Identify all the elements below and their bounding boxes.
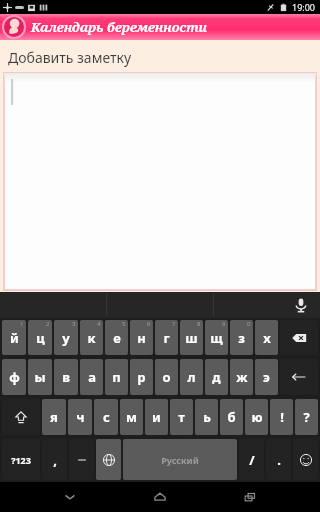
button[interactable]: ц	[28, 320, 52, 355]
button[interactable]: к	[80, 320, 103, 355]
staticText: к	[87, 329, 96, 347]
staticText: 3	[72, 320, 76, 328]
staticText: щ	[210, 329, 223, 347]
button[interactable]: Shift	[2, 399, 40, 435]
button[interactable]: ж	[230, 359, 253, 395]
staticText: 0	[247, 320, 251, 328]
staticText: з	[238, 329, 245, 347]
staticText: ф	[9, 368, 20, 386]
button[interactable]: р	[130, 359, 153, 395]
button[interactable]: э	[255, 359, 278, 395]
button[interactable]: щ	[205, 320, 228, 355]
staticText: /	[249, 451, 255, 469]
staticText: Календарь беременности	[31, 18, 207, 36]
button[interactable]: е	[105, 320, 128, 355]
button[interactable]: в	[54, 359, 78, 395]
button[interactable]: н	[130, 320, 153, 355]
button[interactable]: с	[94, 399, 118, 435]
staticText: ы	[34, 368, 46, 386]
button[interactable]: Back	[50, 482, 90, 512]
staticText: ,	[53, 451, 57, 469]
staticText: 19:00	[292, 1, 316, 13]
button[interactable]: Home	[140, 482, 180, 512]
button[interactable]: г	[155, 320, 178, 355]
staticText: и	[152, 408, 161, 426]
button[interactable]: Enter	[280, 359, 318, 395]
staticText: ь	[203, 408, 211, 426]
button[interactable]: ?	[295, 399, 318, 435]
staticText: т	[178, 408, 185, 426]
button[interactable]: м	[120, 399, 143, 435]
button[interactable]: и	[145, 399, 168, 435]
staticText: ч	[76, 408, 85, 426]
button[interactable]: Backspace	[280, 320, 318, 355]
button[interactable]: з	[230, 320, 253, 355]
button[interactable]: у	[54, 320, 78, 355]
button[interactable]: Emoji	[293, 439, 318, 480]
staticText: ?123	[11, 454, 31, 466]
button[interactable]: ш	[180, 320, 203, 355]
button[interactable]	[4, 73, 316, 290]
button[interactable]: а	[80, 359, 103, 395]
staticText: 1	[20, 320, 24, 328]
button[interactable]: й	[2, 320, 26, 355]
button[interactable]: о	[155, 359, 178, 395]
button[interactable]: ч	[68, 399, 92, 435]
button[interactable]: я	[42, 399, 66, 435]
staticText: р	[137, 368, 146, 386]
staticText: 7	[172, 320, 176, 328]
staticText: н	[137, 329, 146, 347]
button[interactable]: .	[266, 439, 291, 480]
button[interactable]: ь	[195, 399, 218, 435]
button[interactable]: д	[205, 359, 228, 395]
staticText: й	[10, 329, 19, 347]
staticText: д	[212, 368, 221, 386]
staticText: Добавить заметку	[8, 48, 132, 67]
staticText: е	[113, 329, 121, 347]
button[interactable]: Change language	[96, 439, 121, 480]
staticText: я	[50, 408, 58, 426]
staticText: п	[112, 368, 121, 386]
button[interactable]: Voice input	[292, 296, 310, 314]
staticText: ш	[185, 329, 198, 347]
staticText: у	[62, 329, 70, 347]
staticText: ж	[236, 368, 248, 386]
staticText: 4	[97, 320, 101, 328]
staticText: с	[103, 408, 110, 426]
button[interactable]: /	[239, 439, 264, 480]
staticText: !	[280, 408, 284, 426]
button[interactable]: !	[270, 399, 293, 435]
staticText: 2	[46, 320, 50, 328]
staticText: 6	[147, 320, 151, 328]
button[interactable]: п	[105, 359, 128, 395]
button[interactable]: б	[220, 399, 243, 435]
staticText: х	[263, 329, 271, 347]
staticText: э	[263, 368, 270, 386]
button[interactable]: ф	[2, 359, 26, 395]
staticText: ?	[303, 408, 310, 426]
staticText: .	[277, 451, 281, 469]
button[interactable]: ю	[245, 399, 268, 435]
button[interactable]: л	[180, 359, 203, 395]
staticText: м	[126, 408, 137, 426]
staticText: 9	[222, 320, 226, 328]
button[interactable]: ы	[28, 359, 52, 395]
staticText: 8	[197, 320, 201, 328]
button[interactable]: ?123	[2, 439, 40, 480]
button[interactable]: Recent apps	[230, 482, 270, 512]
staticText: в	[62, 368, 70, 386]
staticText: б	[227, 408, 236, 426]
button[interactable]: Dash	[69, 439, 94, 480]
staticText: ю	[251, 408, 263, 426]
staticText: о	[162, 368, 171, 386]
staticText: 5	[122, 320, 126, 328]
button[interactable]: ,	[42, 439, 67, 480]
button[interactable]: App icon	[2, 15, 26, 39]
staticText: а	[88, 368, 96, 386]
staticText: г	[163, 329, 170, 347]
staticText: л	[187, 368, 196, 386]
button[interactable]: Русский	[123, 439, 237, 480]
button[interactable]: т	[170, 399, 193, 435]
staticText: Русский	[161, 454, 199, 466]
button[interactable]: х	[255, 320, 278, 355]
